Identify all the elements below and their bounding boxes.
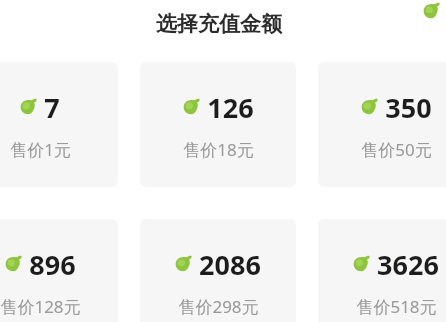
button[interactable]: 7 [0,62,118,187]
staticText: 7 [44,89,60,126]
button[interactable]: 126 [140,62,296,187]
staticText: 选择充值金额 [156,11,282,37]
staticText: 售价518元 [356,295,437,318]
staticText: 售价298元 [178,295,259,318]
staticText: 售价128元 [0,295,81,318]
staticText: 126 [207,89,254,126]
staticText: 3626 [377,246,439,283]
staticText: 2086 [199,246,261,283]
button[interactable]: 896 [0,219,118,322]
staticText: 售价18元 [183,138,254,161]
staticText: 售价1元 [10,138,71,161]
button[interactable]: 350 [318,62,446,187]
other: 积分 [423,2,440,19]
button[interactable]: 2086 [140,219,296,322]
staticText: 896 [29,246,76,283]
button[interactable]: 3626 [318,219,446,322]
staticText: 售价50元 [361,138,432,161]
staticText: 350 [385,89,432,126]
